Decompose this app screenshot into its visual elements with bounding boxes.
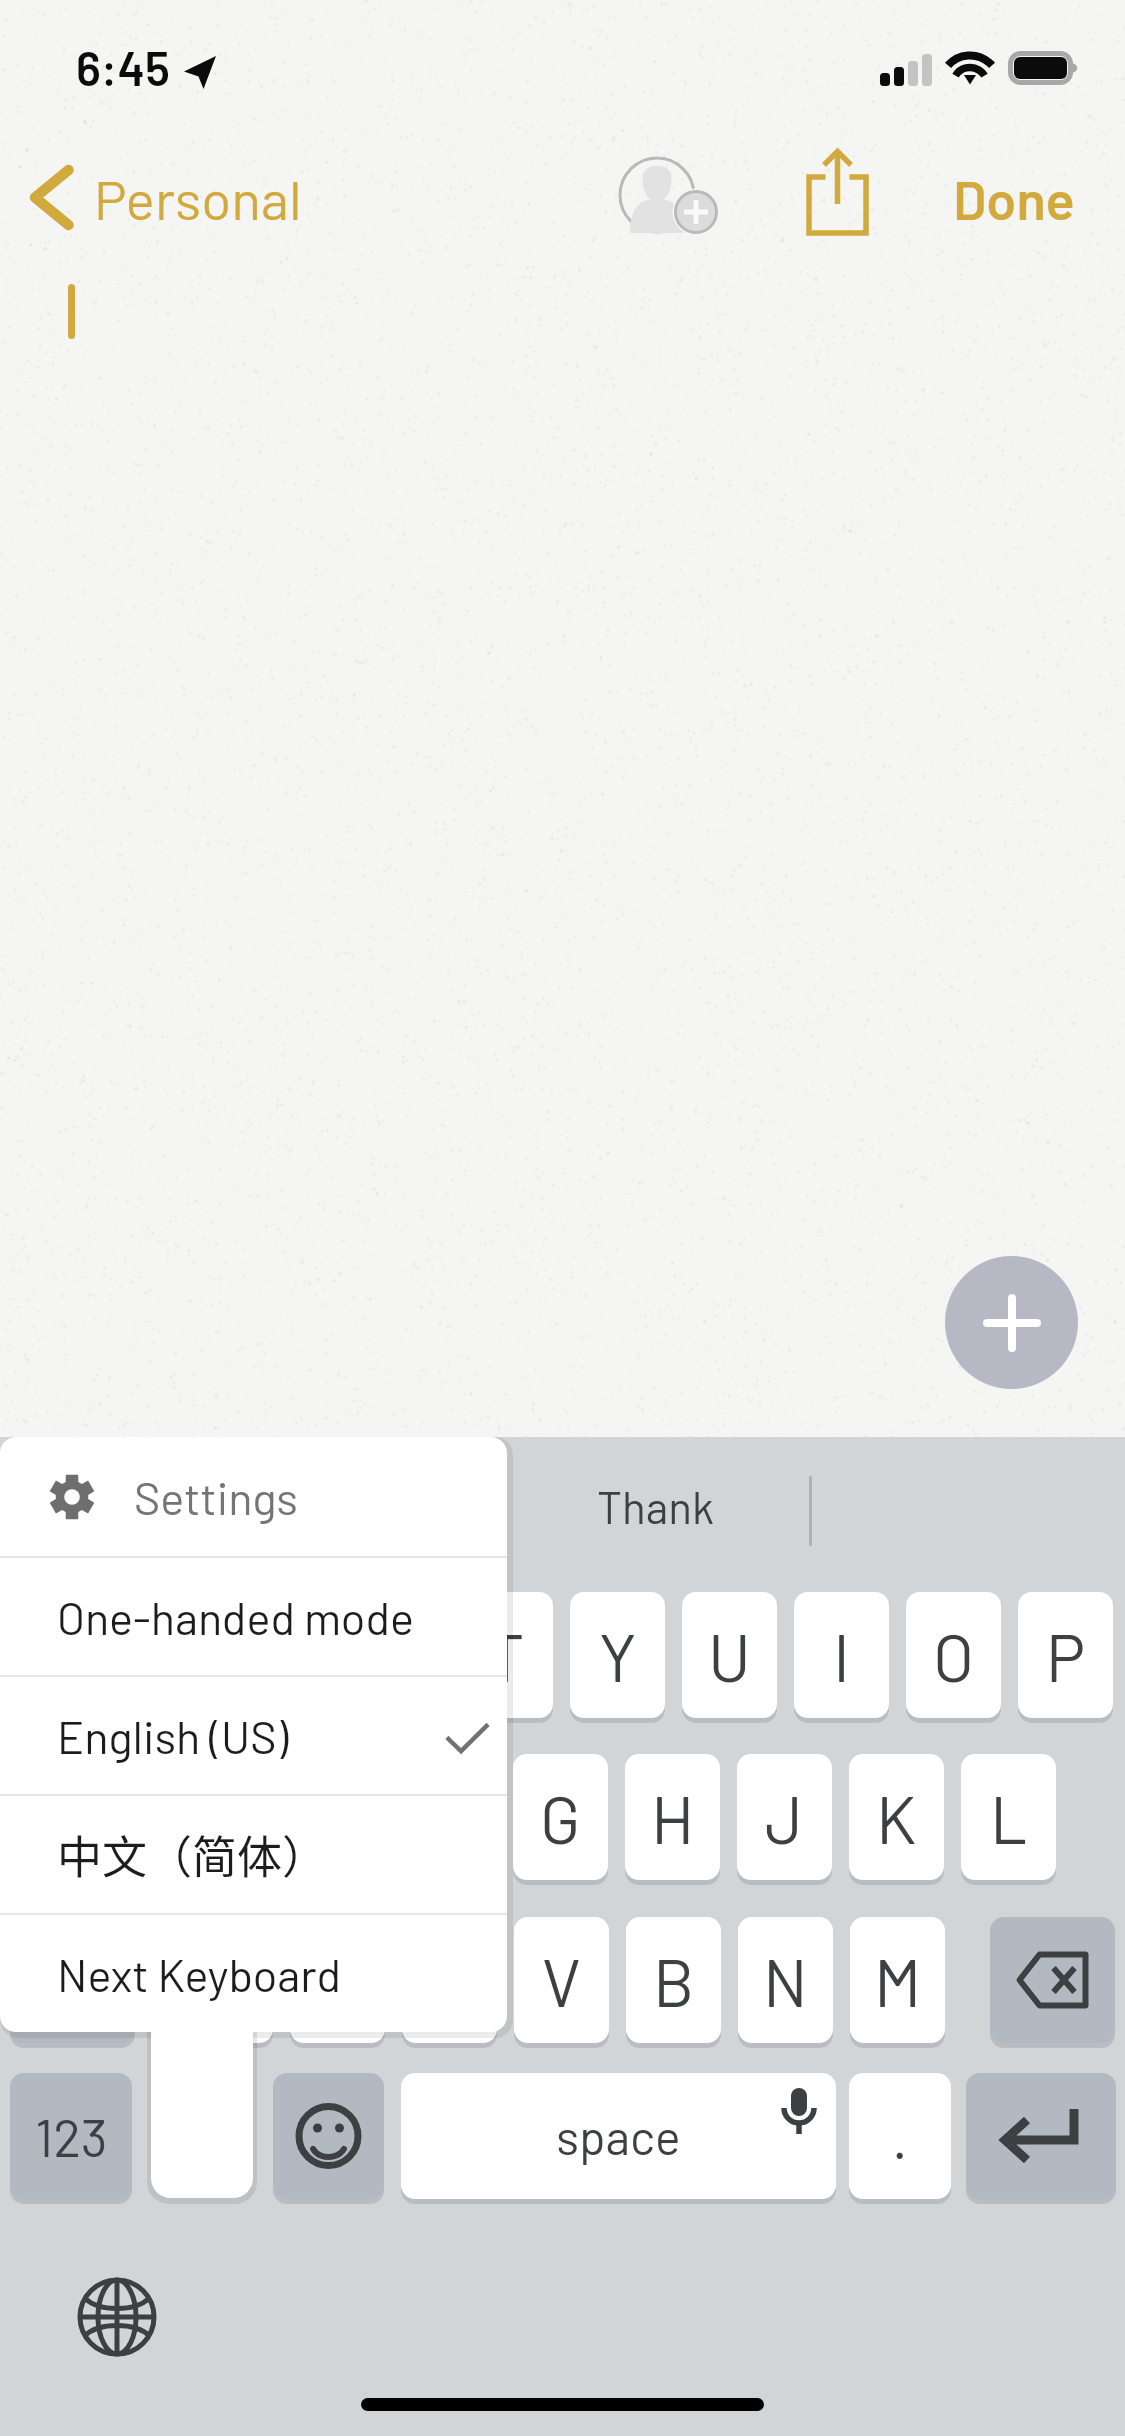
button[interactable]: Emoji <box>273 2073 384 2199</box>
staticText: N <box>763 1941 808 2020</box>
button[interactable]: Z <box>178 1917 273 2043</box>
button[interactable]: J <box>737 1754 832 1880</box>
button[interactable]: Backspace <box>990 1917 1115 2043</box>
button[interactable]: F <box>401 1754 496 1880</box>
staticText: Thank <box>597 1480 714 1533</box>
button[interactable]: Share <box>800 143 880 243</box>
button[interactable]: Add people <box>612 146 722 243</box>
button[interactable]: S <box>177 1754 272 1880</box>
button[interactable]: Change keyboard <box>73 2273 161 2361</box>
button[interactable]: . <box>849 2073 951 2199</box>
staticText: 123 <box>35 2105 108 2167</box>
staticText: . <box>892 2103 908 2170</box>
button[interactable]: New note <box>945 1256 1078 1389</box>
staticText: English (US) <box>57 1709 289 1763</box>
staticText: K <box>876 1778 917 1857</box>
button[interactable]: G <box>513 1754 608 1880</box>
button[interactable]: M <box>850 1917 945 2043</box>
button[interactable]: E <box>234 1592 329 1718</box>
button[interactable]: Q <box>10 1592 105 1718</box>
staticText: X <box>318 1941 357 2020</box>
staticText: Done <box>953 166 1075 231</box>
button[interactable]: Settings <box>0 1437 507 1556</box>
button[interactable]: 123 <box>10 2073 132 2199</box>
staticText: J <box>765 1778 804 1857</box>
staticText: D <box>316 1778 357 1857</box>
button[interactable]: I <box>794 1592 889 1718</box>
button[interactable]: B <box>626 1917 721 2043</box>
staticText: T <box>487 1616 525 1695</box>
staticText: Q <box>38 1616 77 1695</box>
button[interactable]: Y <box>570 1592 665 1718</box>
button[interactable]: A <box>65 1754 160 1880</box>
button[interactable]: D <box>289 1754 384 1880</box>
button[interactable]: T <box>458 1592 553 1718</box>
staticText: Next Keyboard <box>57 1947 342 2001</box>
button[interactable]: Done <box>953 152 1075 244</box>
button[interactable]: K <box>849 1754 944 1880</box>
button[interactable]: Return <box>966 2073 1116 2199</box>
button[interactable]: space <box>401 2073 836 2199</box>
staticText: O <box>933 1616 975 1695</box>
staticText: U <box>708 1616 751 1695</box>
staticText: Y <box>599 1616 637 1695</box>
staticText: E <box>262 1616 302 1695</box>
button[interactable]: X <box>290 1917 385 2043</box>
staticText: A <box>92 1778 133 1857</box>
button[interactable]: English (US) <box>0 1677 507 1794</box>
staticText: W <box>141 1616 199 1695</box>
button[interactable]: W <box>122 1592 217 1718</box>
staticText: space <box>556 2107 681 2165</box>
staticText: One-handed mode <box>57 1590 414 1644</box>
staticText: Settings <box>134 1470 298 1524</box>
button[interactable]: 中文（简体） <box>0 1796 507 1913</box>
staticText: 6:45 <box>76 39 170 95</box>
staticText: 中文（简体） <box>57 1822 328 1887</box>
staticText: R <box>373 1616 414 1695</box>
button[interactable]: V <box>514 1917 609 2043</box>
staticText: Personal <box>94 165 302 231</box>
button[interactable]: L <box>961 1754 1056 1880</box>
button[interactable]: P <box>1018 1592 1113 1718</box>
button[interactable]: Thank <box>560 1460 750 1552</box>
button[interactable]: Next Keyboard <box>0 1915 507 2032</box>
staticText: Z <box>207 1941 244 2020</box>
staticText: G <box>540 1778 581 1857</box>
button[interactable]: Personal <box>22 152 302 244</box>
staticText: P <box>1046 1616 1086 1695</box>
button[interactable]: C <box>402 1917 497 2043</box>
staticText: L <box>990 1778 1028 1857</box>
staticText: B <box>653 1941 695 2020</box>
button[interactable]: R <box>346 1592 441 1718</box>
staticText: I <box>833 1616 851 1695</box>
staticText: V <box>542 1941 581 2020</box>
staticText: M <box>874 1941 922 2020</box>
button[interactable]: O <box>906 1592 1001 1718</box>
button[interactable]: One-handed mode <box>0 1558 507 1675</box>
staticText: F <box>430 1778 468 1857</box>
button[interactable]: N <box>738 1917 833 2043</box>
button[interactable]: H <box>625 1754 720 1880</box>
button[interactable]: Shift <box>10 1917 135 2043</box>
staticText: H <box>651 1778 695 1857</box>
button[interactable]: U <box>682 1592 777 1718</box>
staticText: S <box>205 1778 244 1857</box>
